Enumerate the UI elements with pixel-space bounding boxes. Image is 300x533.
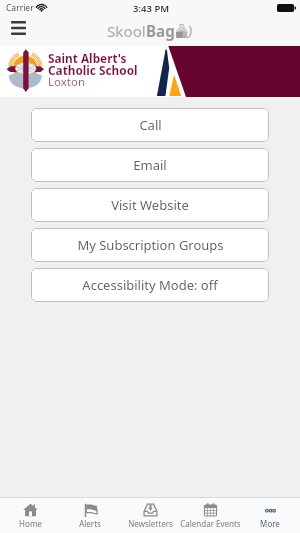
staticText: Loxton — [48, 74, 86, 90]
button[interactable]: My Subscription Groups — [31, 228, 269, 262]
staticText: Home — [19, 518, 42, 529]
staticText: My Subscription Groups — [77, 236, 224, 254]
staticText: Alerts — [79, 518, 101, 529]
staticText: More — [260, 518, 280, 529]
button[interactable]: Newsletters — [120, 498, 180, 533]
staticText: Email — [133, 156, 167, 174]
staticText: 3:43 PM — [133, 2, 170, 15]
button[interactable]: Alerts — [60, 498, 120, 533]
button[interactable]: More — [240, 498, 300, 533]
staticText: Calendar Events — [180, 518, 240, 529]
button[interactable]: Accessibility Mode: off — [31, 268, 269, 302]
staticText: Accessibility Mode: off — [82, 276, 218, 294]
staticText: Bag — [146, 21, 175, 42]
staticText: Carrier — [6, 2, 34, 14]
staticText: Visit Website — [111, 196, 189, 214]
button[interactable]: Email — [31, 148, 269, 182]
button[interactable]: Calendar Events — [180, 498, 240, 533]
staticText: Skool — [107, 21, 146, 42]
button[interactable]: Visit Website — [31, 188, 269, 222]
button[interactable]: Open navigation menu — [4, 16, 32, 40]
staticText: Newsletters — [128, 518, 173, 529]
button[interactable]: Call — [31, 108, 269, 142]
button[interactable]: Home — [0, 498, 60, 533]
staticText: Saint Albert's — [48, 50, 127, 66]
staticText: Call — [139, 116, 162, 134]
staticText: Catholic School — [48, 62, 138, 78]
